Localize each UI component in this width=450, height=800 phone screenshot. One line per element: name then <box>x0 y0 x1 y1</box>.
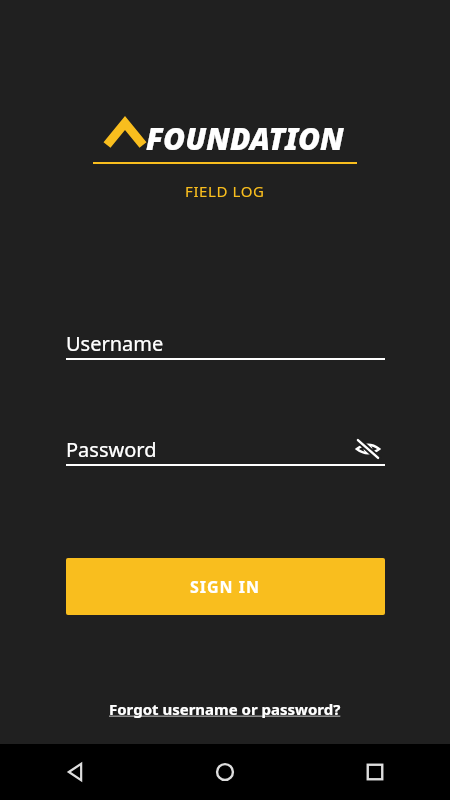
button[interactable]: Recents <box>300 744 450 800</box>
button[interactable]: Username <box>66 328 385 358</box>
staticText: Username <box>66 330 164 357</box>
staticText: Password <box>66 436 157 463</box>
button[interactable]: Password <box>66 434 385 464</box>
button[interactable]: SIGN IN <box>66 558 385 615</box>
button[interactable]: Home <box>150 744 300 800</box>
button[interactable]: Forgot username or password? <box>103 697 347 721</box>
button[interactable]: Show password <box>351 434 385 464</box>
staticText: SIGN IN <box>190 576 261 598</box>
staticText: Forgot username or password? <box>109 699 341 719</box>
button[interactable]: Back <box>0 744 150 800</box>
staticText: FOUNDATION <box>146 118 344 150</box>
staticText: FIELD LOG <box>185 181 265 201</box>
